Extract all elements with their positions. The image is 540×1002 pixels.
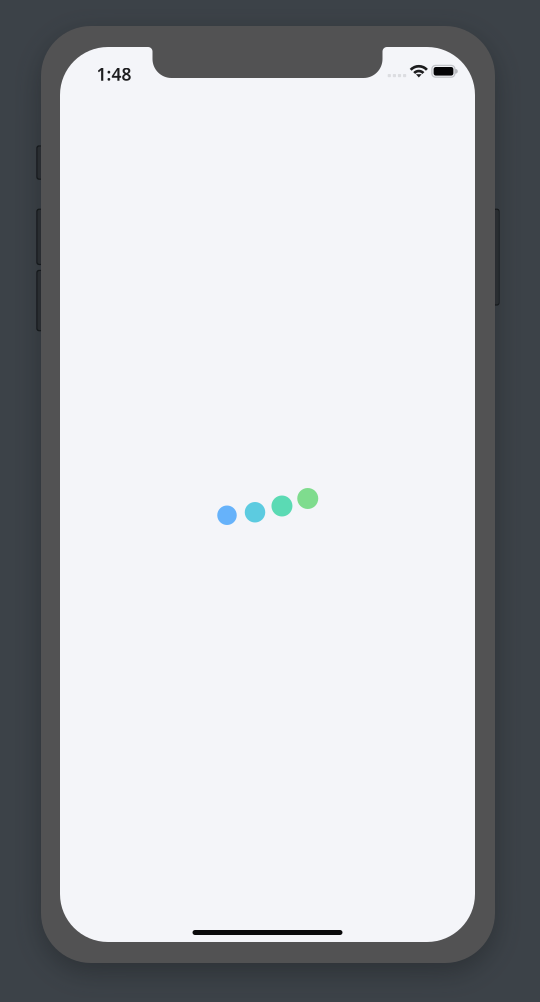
staticText: 1:48 [97,62,132,85]
button[interactable]: Loading [217,488,318,525]
